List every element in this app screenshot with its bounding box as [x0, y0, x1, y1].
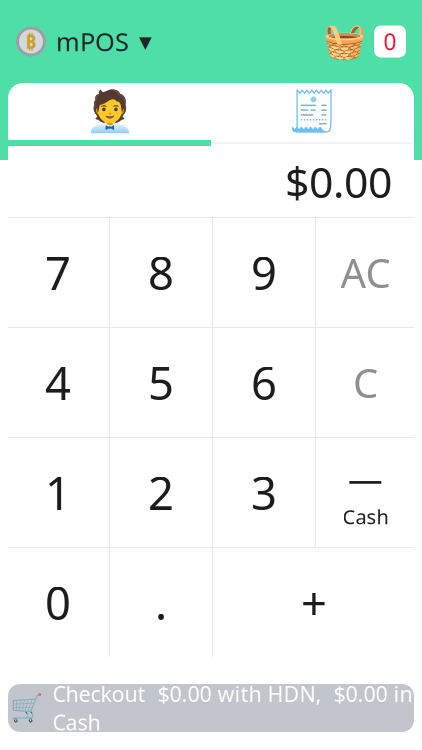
staticText: AC — [340, 246, 390, 299]
button[interactable]: 4 — [7, 328, 109, 437]
button[interactable]: Subtract cash — [316, 438, 415, 547]
staticText: 0 — [45, 572, 71, 633]
button[interactable]: Add — [213, 548, 415, 657]
button[interactable]: Cart items: 0 — [374, 25, 406, 57]
staticText: ▾ — [139, 27, 152, 56]
staticText: 0 — [383, 26, 396, 56]
staticText: 5 — [148, 352, 174, 413]
staticText: Cash — [342, 503, 388, 530]
staticText: 4 — [45, 352, 71, 413]
staticText: 8 — [148, 242, 174, 303]
button[interactable]: Clear — [316, 328, 415, 437]
button[interactable]: Receipts — [211, 83, 414, 140]
staticText: ₿ — [25, 29, 36, 54]
button[interactable]: 0 — [7, 548, 109, 657]
staticText: 1 — [45, 462, 71, 523]
button[interactable]: 7 — [7, 218, 109, 327]
button[interactable]: 1 — [7, 438, 109, 547]
staticText: 🧾 — [287, 89, 337, 134]
staticText: . — [155, 572, 167, 633]
staticText: Checkout $0.00 with HDN, $0.00 in Cash — [52, 680, 412, 736]
button[interactable]: 3 — [213, 438, 315, 547]
button[interactable]: 5 — [110, 328, 212, 437]
staticText: $0.00 — [285, 153, 392, 210]
button[interactable]: ₿ — [0, 17, 152, 66]
staticText: 🧑‍💼 — [84, 89, 134, 134]
staticText: 🧺 — [323, 22, 366, 61]
button[interactable]: 9 — [213, 218, 315, 327]
button[interactable]: Basket — [323, 18, 366, 65]
button[interactable]: All clear — [316, 218, 415, 327]
staticText: 2 — [148, 462, 174, 523]
button[interactable]: Sell — [8, 83, 211, 140]
staticText: 7 — [45, 242, 71, 303]
staticText: — — [348, 455, 383, 501]
button[interactable]: 🛒 — [8, 684, 414, 732]
staticText: 3 — [251, 462, 277, 523]
button[interactable]: 2 — [110, 438, 212, 547]
button[interactable]: 8 — [110, 218, 212, 327]
staticText: + — [301, 572, 327, 633]
staticText: 🛒 — [9, 693, 42, 723]
staticText: 6 — [251, 352, 277, 413]
staticText: mPOS — [56, 25, 129, 58]
button[interactable]: Decimal point — [110, 548, 212, 657]
button[interactable]: 6 — [213, 328, 315, 437]
staticText: C — [353, 356, 378, 409]
staticText: 9 — [251, 242, 277, 303]
